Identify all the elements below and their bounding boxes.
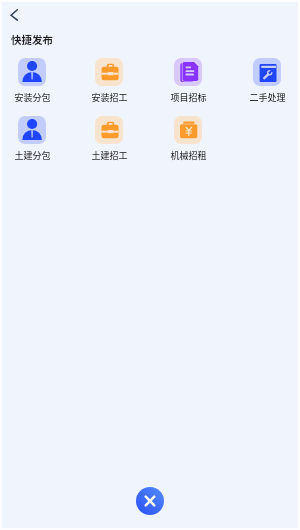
staticText: 安装招工 xyxy=(91,91,128,104)
button[interactable]: Back xyxy=(3,4,25,26)
button[interactable]: 安装分包 xyxy=(0,58,66,104)
staticText: 二手处理 xyxy=(249,91,286,104)
button[interactable]: 项目招标 xyxy=(154,58,222,104)
button[interactable]: 二手处理 xyxy=(233,58,300,104)
button[interactable]: Close xyxy=(136,487,164,515)
staticText: 机械招租 xyxy=(170,149,207,162)
button[interactable]: 土建分包 xyxy=(0,116,66,162)
staticText: 土建招工 xyxy=(91,149,128,162)
staticText: 快捷发布 xyxy=(11,32,53,47)
staticText: 安装分包 xyxy=(14,91,51,104)
button[interactable]: 机械招租 xyxy=(154,116,222,162)
button[interactable]: 安装招工 xyxy=(75,58,143,104)
staticText: 项目招标 xyxy=(170,91,207,104)
button[interactable]: 土建招工 xyxy=(75,116,143,162)
staticText: 土建分包 xyxy=(14,149,51,162)
